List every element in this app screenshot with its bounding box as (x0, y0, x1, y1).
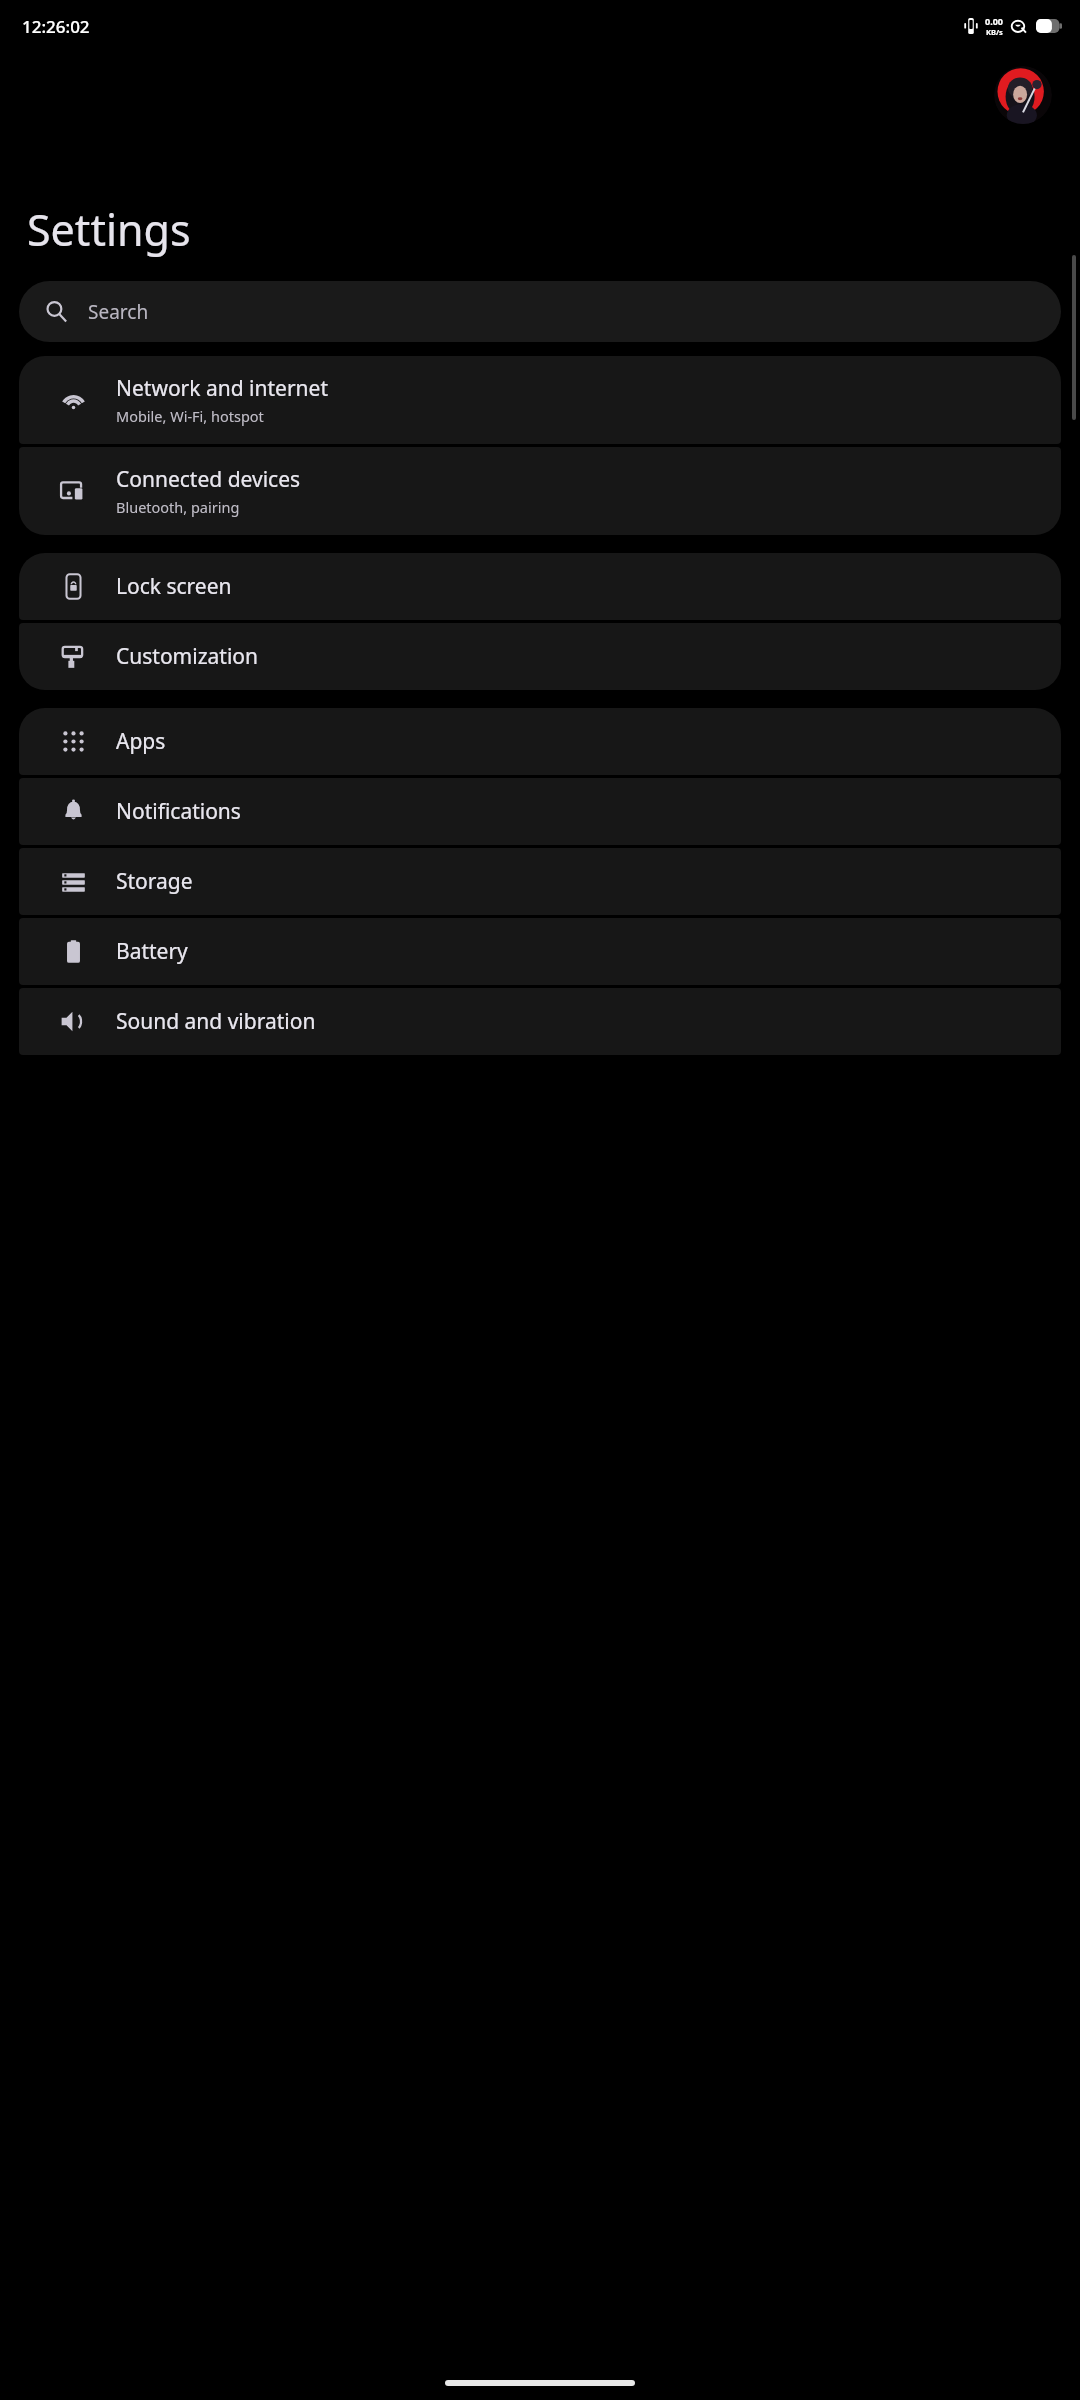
button[interactable]: Lock screen (19, 553, 1061, 620)
staticText: Customization (116, 642, 258, 671)
staticText: Apps (116, 727, 166, 756)
staticText: Network and internet (116, 374, 328, 403)
staticText: Storage (116, 867, 193, 896)
staticText: 0.00 (985, 15, 1003, 27)
staticText: Battery (116, 937, 188, 966)
button[interactable]: Apps (19, 708, 1061, 775)
button[interactable]: Search (19, 281, 1061, 342)
button[interactable]: Connected devices (19, 447, 1061, 535)
staticText: 12:26:02 (22, 15, 90, 38)
button[interactable]: Account (994, 66, 1052, 124)
button[interactable]: Sound and vibration (19, 988, 1061, 1055)
button[interactable]: Battery (19, 918, 1061, 985)
staticText: Notifications (116, 797, 241, 826)
staticText: Settings (27, 200, 191, 259)
staticText: Mobile, Wi-Fi, hotspot (116, 406, 264, 426)
button[interactable]: Network and internet (19, 356, 1061, 444)
staticText: Sound and vibration (116, 1007, 316, 1036)
staticText: Lock screen (116, 572, 232, 601)
button[interactable]: Customization (19, 623, 1061, 690)
staticText: Bluetooth, pairing (116, 497, 240, 517)
staticText: Search (88, 299, 149, 325)
staticText: Connected devices (116, 465, 301, 494)
button[interactable]: Notifications (19, 778, 1061, 845)
staticText: KB/s (986, 27, 1003, 37)
button[interactable]: Storage (19, 848, 1061, 915)
